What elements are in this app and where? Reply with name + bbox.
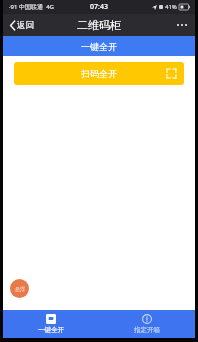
staticText: 二维码柜 xyxy=(77,18,121,32)
staticText: 一键全开 xyxy=(81,41,117,52)
button[interactable]: Assistive ball xyxy=(10,279,29,298)
staticText: 指定开箱 xyxy=(134,326,160,334)
staticText: 41% xyxy=(165,3,177,11)
staticText: 07:43 xyxy=(90,2,108,12)
button[interactable]: 扫码全开 xyxy=(14,62,184,85)
button[interactable]: 返回 xyxy=(3,14,41,36)
staticText: ·91 中国联通 4G xyxy=(9,3,54,11)
button[interactable]: 一键全开 xyxy=(3,310,99,338)
button[interactable]: 一键全开 xyxy=(3,36,195,56)
button[interactable]: 指定开箱 xyxy=(99,310,195,338)
staticText: 一键全开 xyxy=(38,326,64,334)
staticText: 悬浮 xyxy=(15,286,25,292)
staticText: 扫码全开 xyxy=(81,68,117,79)
button[interactable]: More options xyxy=(169,14,195,36)
staticText: 返回 xyxy=(17,20,34,31)
